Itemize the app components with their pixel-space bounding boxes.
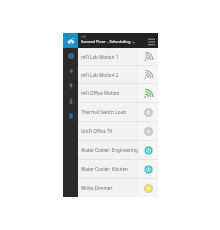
button[interactable]: White Dimmer bbox=[78, 179, 158, 197]
staticText: Second Floor - Scheduling bbox=[81, 39, 131, 45]
button[interactable]: UniFi Office TV bbox=[78, 122, 158, 140]
staticText: Water Cooler: Kitchen bbox=[81, 166, 128, 172]
button[interactable]: mFi Lab Motion 1 bbox=[78, 48, 158, 65]
button[interactable]: Locations bbox=[63, 78, 78, 93]
button[interactable]: Thermostats bbox=[63, 93, 78, 108]
button[interactable]: Menu bbox=[145, 35, 157, 47]
button[interactable]: Cameras bbox=[63, 48, 78, 63]
staticText: mFi Lab Motion 1 bbox=[81, 54, 119, 60]
staticText: mFi Office Motion bbox=[81, 90, 120, 96]
button[interactable]: Home bbox=[63, 33, 78, 48]
button[interactable]: mFi Lab Motion 2 bbox=[78, 66, 158, 83]
staticText: mFi Lab Motion 2 bbox=[81, 72, 119, 78]
staticText: White Dimmer bbox=[81, 185, 113, 191]
button[interactable]: Water Cooler: Kitchen bbox=[78, 160, 158, 178]
staticText: Water Cooler: Engineering bbox=[81, 147, 138, 153]
staticText: UniFi Office TV bbox=[81, 128, 113, 134]
button[interactable]: Thermal Switch Load bbox=[78, 103, 158, 121]
staticText: Thermal Switch Load bbox=[81, 109, 126, 115]
button[interactable]: Water Cooler: Engineering bbox=[78, 141, 158, 159]
button[interactable]: mFi Office Motion bbox=[78, 84, 158, 102]
button[interactable]: Sensors bbox=[63, 63, 78, 78]
button[interactable]: Doors bbox=[63, 108, 78, 123]
staticText: mFi bbox=[81, 35, 87, 39]
